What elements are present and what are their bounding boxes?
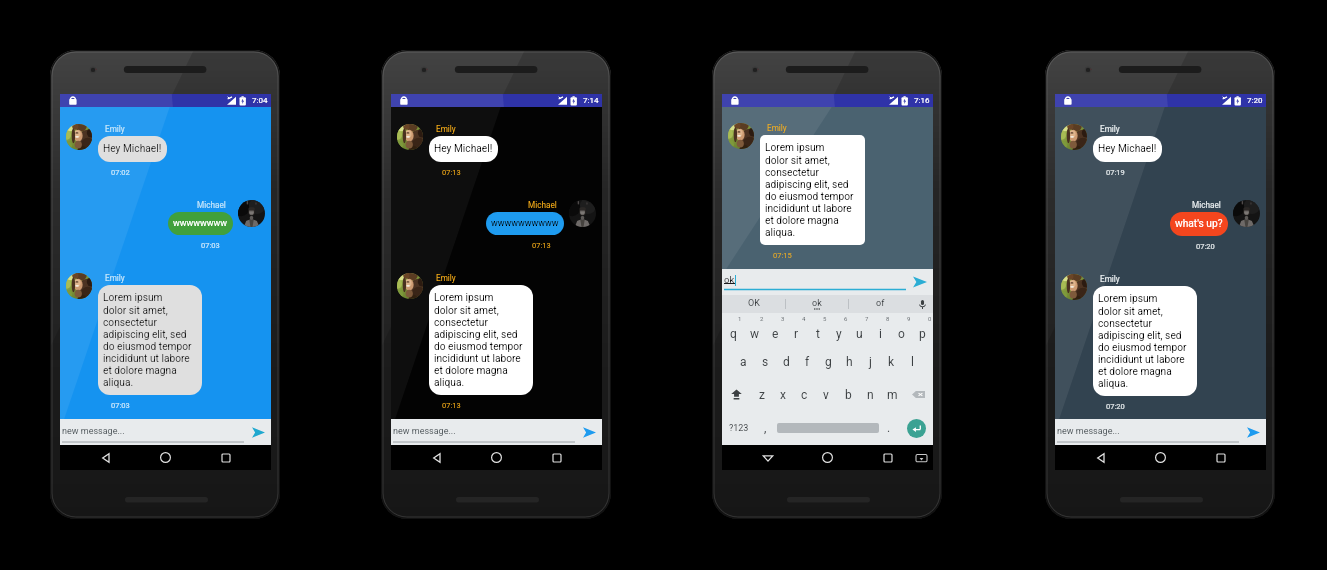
button[interactable]: f [797, 345, 818, 378]
button[interactable]: Hey Michael! [429, 136, 498, 162]
button[interactable]: 0 [912, 313, 933, 345]
staticText: Lorem ipsum dolor sit amet, consectetur … [1098, 293, 1187, 389]
button[interactable]: Recent apps [213, 445, 238, 470]
button[interactable]: Lorem ipsum dolor sit amet, consectetur … [760, 135, 865, 245]
staticText: y [836, 327, 842, 341]
button[interactable]: z [751, 378, 772, 411]
staticText: w [750, 327, 760, 341]
staticText: 7:16 [914, 96, 930, 105]
staticText: s [762, 355, 769, 369]
staticText: l [911, 355, 914, 369]
button[interactable]: Recent apps [1208, 445, 1233, 470]
button[interactable]: k [881, 345, 902, 378]
button[interactable]: h [839, 345, 860, 378]
button[interactable]: , [755, 411, 775, 445]
button[interactable]: 6 [828, 313, 849, 345]
staticText: 4 [802, 315, 806, 322]
staticText: 07:03 [201, 241, 220, 250]
button[interactable]: Back [424, 445, 449, 470]
button[interactable]: Back [1088, 445, 1113, 470]
button[interactable]: . [879, 411, 899, 445]
staticText: 07:19 [1106, 168, 1125, 177]
button[interactable]: ok [724, 274, 906, 291]
button[interactable]: Send [1244, 423, 1262, 441]
staticText: e [772, 327, 779, 341]
button[interactable]: wwwwwwwwww [486, 212, 564, 235]
button[interactable]: 3 [765, 313, 786, 345]
staticText: Emily [1100, 124, 1120, 134]
button[interactable]: new message... [393, 424, 575, 443]
button[interactable]: v [815, 378, 837, 411]
button[interactable]: Hide keyboard [913, 450, 929, 466]
button[interactable]: 1 [722, 313, 744, 345]
staticText: ok [724, 274, 735, 285]
staticText: 7:20 [1247, 96, 1263, 105]
button[interactable]: Voice input [911, 295, 933, 313]
button[interactable]: a [732, 345, 754, 378]
button[interactable]: 2 [744, 313, 765, 345]
button[interactable]: l [902, 345, 923, 378]
button[interactable]: new message... [62, 424, 244, 443]
staticText: what's up? [1175, 218, 1223, 230]
button[interactable]: Recent apps [875, 445, 900, 470]
button[interactable]: x [772, 378, 793, 411]
button[interactable]: Hey Michael! [98, 136, 167, 162]
button[interactable]: m [881, 378, 903, 411]
staticText: a [740, 355, 747, 369]
button[interactable]: new message... [1057, 424, 1239, 443]
staticText: Emily [105, 124, 125, 134]
button[interactable]: Back [93, 445, 118, 470]
button[interactable]: d [776, 345, 797, 378]
button[interactable]: Home [153, 445, 178, 470]
button[interactable]: 5 [807, 313, 828, 345]
button[interactable]: b [837, 378, 859, 411]
button[interactable]: Enter [907, 419, 926, 438]
staticText: Michael [1192, 200, 1221, 210]
staticText: Lorem ipsum dolor sit amet, consectetur … [434, 292, 523, 388]
button[interactable]: s [754, 345, 776, 378]
button[interactable]: c [793, 378, 815, 411]
button[interactable]: Home [1148, 445, 1173, 470]
staticText: j [869, 355, 872, 369]
staticText: 9 [907, 315, 911, 322]
staticText: b [845, 388, 852, 402]
button[interactable]: 9 [891, 313, 912, 345]
staticText: v [823, 388, 829, 402]
button[interactable]: Hey Michael! [1093, 136, 1162, 162]
staticText: Hey Michael! [1098, 143, 1157, 155]
button[interactable]: j [860, 345, 881, 378]
button[interactable]: Backspace [903, 378, 933, 411]
staticText: Hey Michael! [103, 143, 162, 155]
button[interactable]: g [818, 345, 839, 378]
button[interactable]: 4 [786, 313, 807, 345]
button[interactable]: Home [484, 445, 509, 470]
button[interactable]: wwwwwwww [168, 212, 233, 235]
button[interactable]: ?123 [722, 411, 755, 445]
button[interactable]: Back [755, 445, 780, 470]
button[interactable]: 8 [870, 313, 891, 345]
staticText: k [888, 355, 895, 369]
button[interactable]: Send [911, 273, 929, 291]
button[interactable]: Send [249, 423, 267, 441]
button[interactable]: Home [815, 445, 840, 470]
button[interactable]: what's up? [1170, 212, 1228, 236]
staticText: ?123 [729, 423, 749, 434]
button[interactable]: OK [722, 295, 785, 313]
staticText: 07:15 [773, 251, 792, 260]
button[interactable]: Lorem ipsum dolor sit amet, consectetur … [429, 285, 533, 395]
button[interactable]: Shift [722, 378, 751, 411]
button[interactable]: n [859, 378, 881, 411]
button[interactable]: ok [786, 295, 848, 313]
staticText: Emily [105, 273, 125, 283]
button[interactable]: Send [580, 423, 598, 441]
staticText: f [805, 355, 810, 369]
button[interactable]: Recent apps [544, 445, 569, 470]
staticText: 0 [928, 315, 932, 322]
staticText: d [783, 355, 790, 369]
button[interactable]: Lorem ipsum dolor sit amet, consectetur … [98, 285, 202, 395]
staticText: 7 [865, 315, 869, 322]
button[interactable]: 7 [849, 313, 870, 345]
button[interactable]: of [849, 295, 911, 313]
button[interactable]: Lorem ipsum dolor sit amet, consectetur … [1093, 286, 1197, 396]
